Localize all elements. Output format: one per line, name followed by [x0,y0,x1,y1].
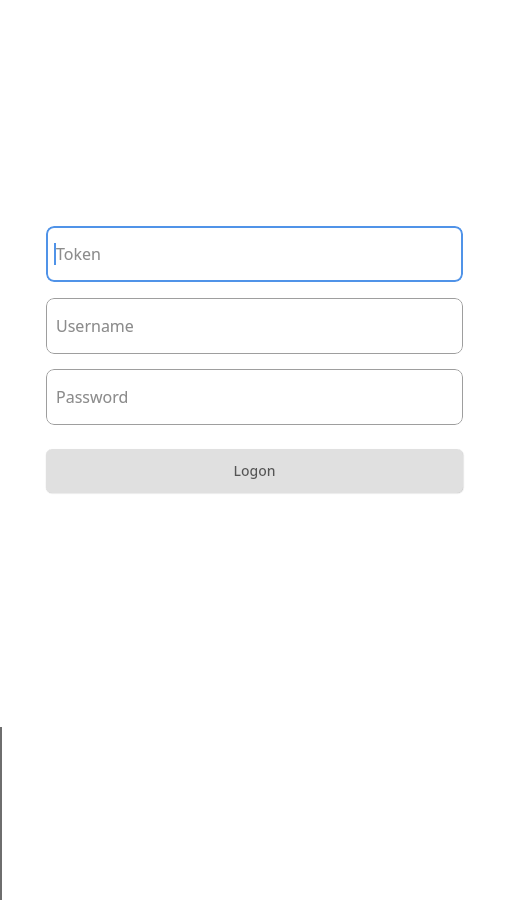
staticText: Password [56,386,129,408]
button[interactable]: Logon [46,449,463,493]
button[interactable]: Token [46,226,463,282]
staticText: Username [56,315,134,337]
button[interactable]: Username [46,298,463,354]
staticText: Logon [233,461,276,480]
staticText: Token [56,243,101,265]
button[interactable]: Password [46,369,463,425]
